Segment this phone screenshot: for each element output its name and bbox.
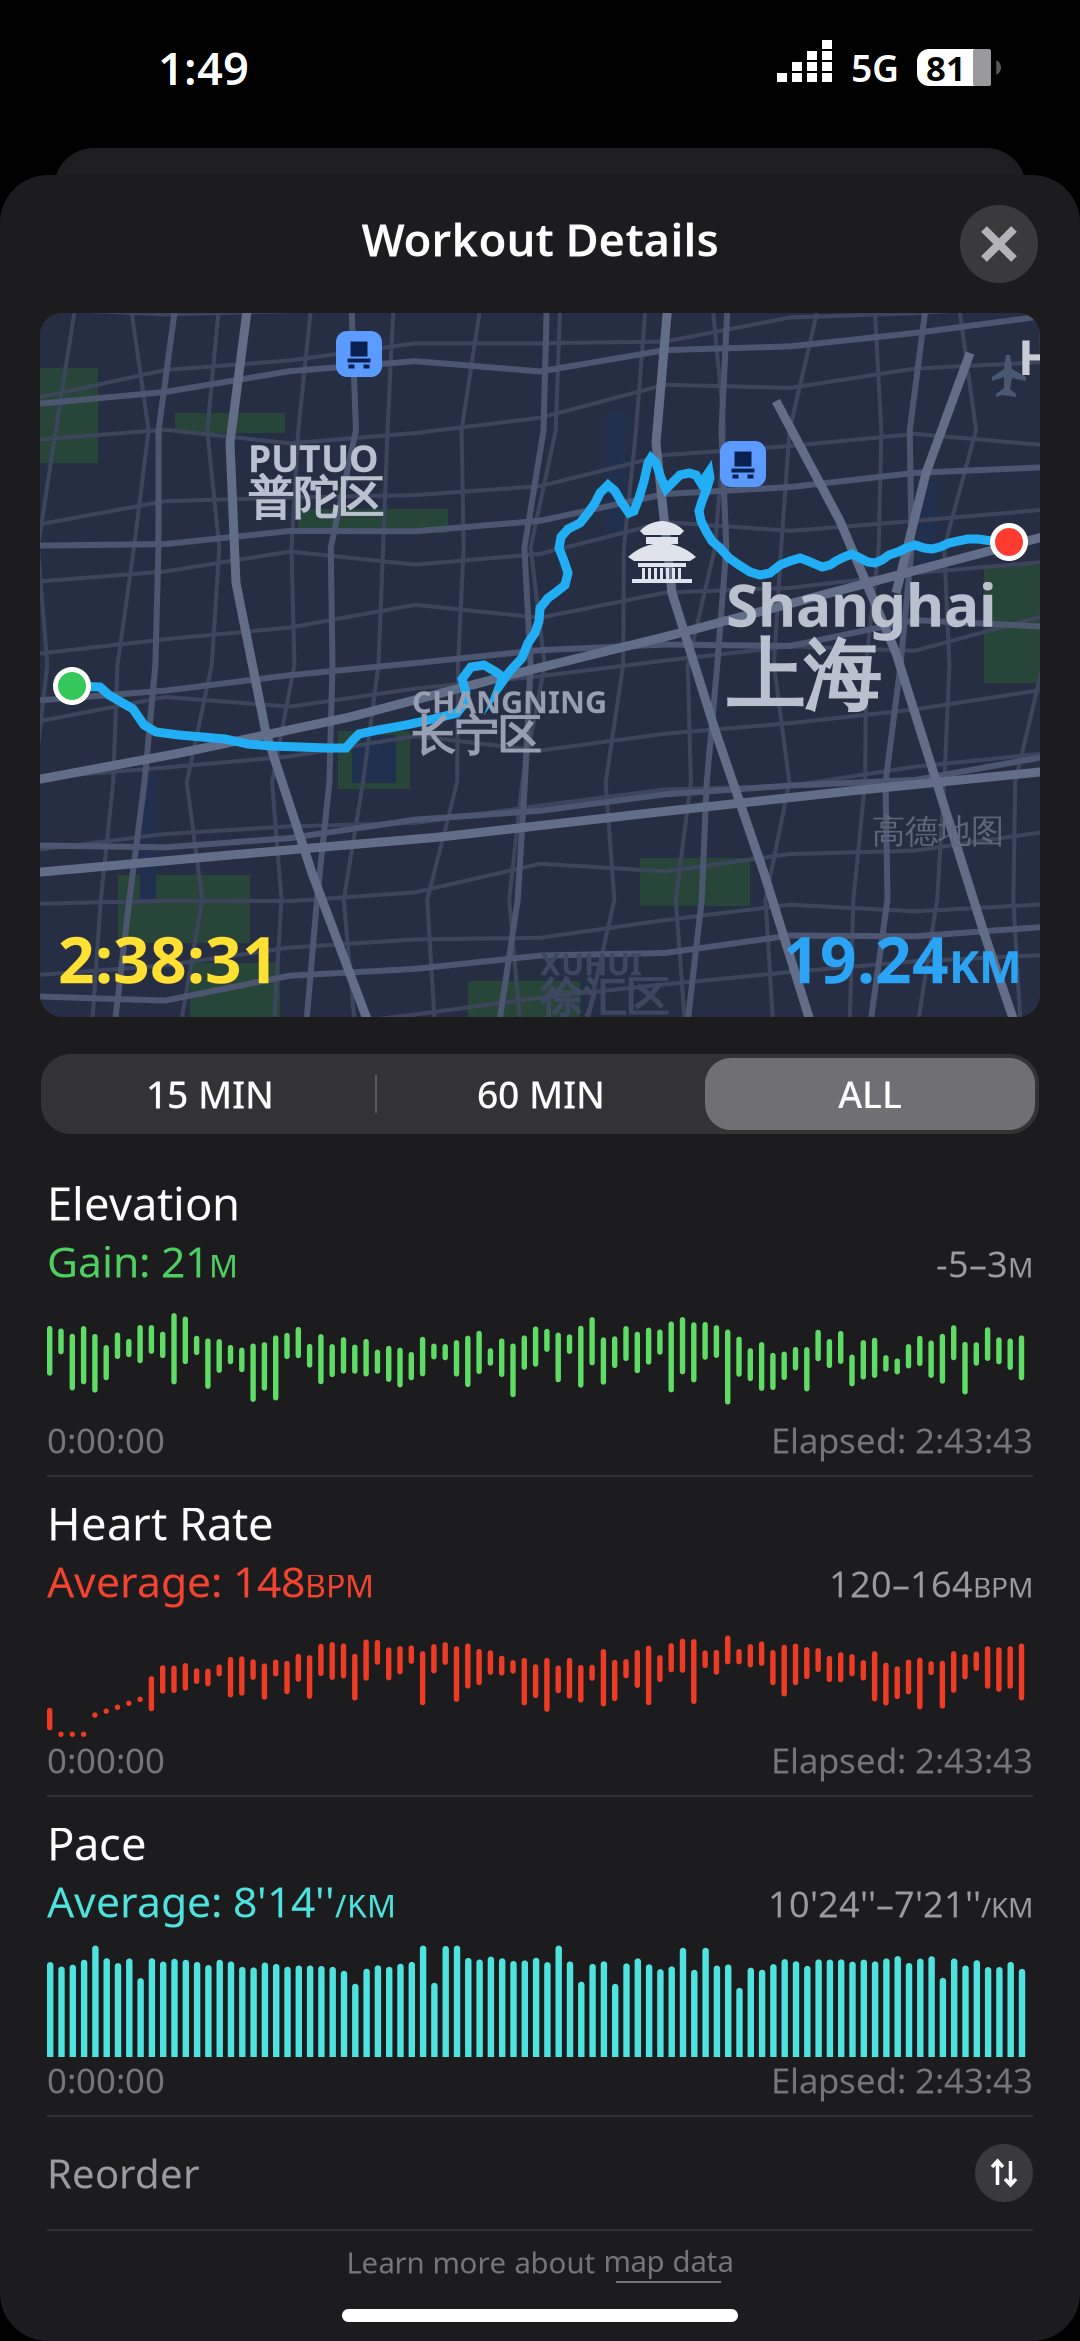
button[interactable]: 60 MIN [377,1058,705,1130]
staticText: 120–164 [829,1560,973,1607]
staticText: Elapsed: 2:43:43 [771,1417,1033,1463]
staticText: Pace [47,1813,147,1873]
staticText: Heart Rate [47,1493,274,1553]
staticText: Shanghai [726,565,997,643]
staticText: 1:49 [158,37,249,98]
staticText: 0:00:00 [47,1737,165,1783]
staticText: 0:00:00 [47,1417,165,1463]
staticText: ALL [838,1069,902,1119]
staticText: 81 [926,44,966,90]
button[interactable]: ALL [705,1058,1035,1130]
staticText: H [1018,325,1055,389]
staticText: BPM [973,1568,1033,1605]
staticText: 60 MIN [477,1069,605,1119]
staticText: KM [949,936,1022,996]
staticText: 10'24''–7'21'' [768,1880,981,1927]
staticText: map data [603,2241,733,2280]
staticText: PUTUO [248,433,379,483]
staticText: BPM [305,1564,374,1606]
staticText: /KM [981,1888,1033,1925]
button[interactable]: Close [960,205,1038,283]
staticText: 15 MIN [146,1069,274,1119]
staticText: M [1008,1248,1033,1285]
staticText: Workout Details [361,209,718,269]
staticText: 0:00:00 [47,2057,165,2103]
staticText: Gain: 21 [47,1233,209,1289]
staticText: 5G [851,43,899,92]
staticText: XUHUI [540,943,642,984]
button[interactable]: 15 MIN [45,1058,375,1130]
staticText: M [209,1244,238,1286]
staticText: Elapsed: 2:43:43 [771,1737,1033,1783]
staticText: 19.24 [783,916,949,1001]
staticText: 2:38:31 [58,916,279,1001]
staticText: Reorder [47,2146,200,2199]
button[interactable]: Reorder [47,2117,1033,2229]
staticText: 普陀区 [248,471,383,526]
staticText: 高德地图 [872,811,1004,852]
staticText: /KM [335,1884,396,1926]
staticText: 长宁区 [412,710,541,762]
staticText: 徐汇区 [540,972,669,1024]
staticText: -5–3 [936,1240,1008,1287]
staticText: CHANGNING [412,681,607,722]
button[interactable]: map data [603,2241,733,2283]
staticText: Learn more about [346,2242,603,2281]
staticText: 上海 [726,629,880,724]
staticText: Average: 8'14'' [47,1873,335,1929]
staticText: Elevation [47,1173,240,1233]
staticText: Elapsed: 2:43:43 [771,2057,1033,2103]
staticText: Average: 148 [47,1553,305,1609]
